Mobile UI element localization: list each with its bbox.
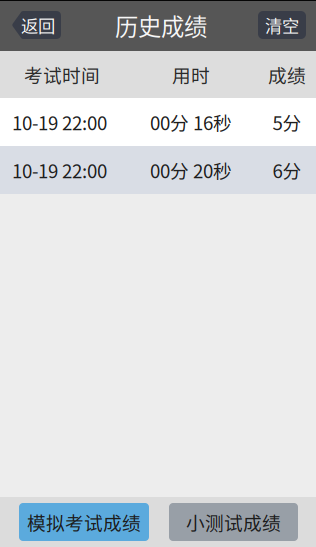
button[interactable]: 返回: [12, 11, 61, 39]
staticText: 00分 16秒: [150, 108, 232, 135]
staticText: 模拟考试成绩: [27, 508, 141, 535]
staticText: 小测试成绩: [186, 508, 281, 535]
button[interactable]: 模拟考试成绩: [19, 503, 149, 541]
staticText: 6分: [272, 156, 301, 183]
staticText: 10-19 22:00: [12, 108, 107, 135]
staticText: 历史成绩: [115, 9, 207, 42]
button[interactable]: 10-19 22:00: [0, 146, 316, 194]
staticText: 清空: [265, 12, 299, 38]
button[interactable]: 10-19 22:00: [0, 98, 316, 146]
staticText: 5分: [272, 108, 301, 135]
staticText: 成绩: [268, 61, 306, 88]
button[interactable]: 小测试成绩: [169, 503, 298, 541]
staticText: 00分 20秒: [150, 156, 232, 183]
button[interactable]: 清空: [258, 11, 306, 39]
staticText: 考试时间: [24, 61, 100, 88]
staticText: 用时: [172, 61, 210, 88]
staticText: 10-19 22:00: [12, 156, 107, 183]
staticText: 返回: [21, 12, 55, 38]
